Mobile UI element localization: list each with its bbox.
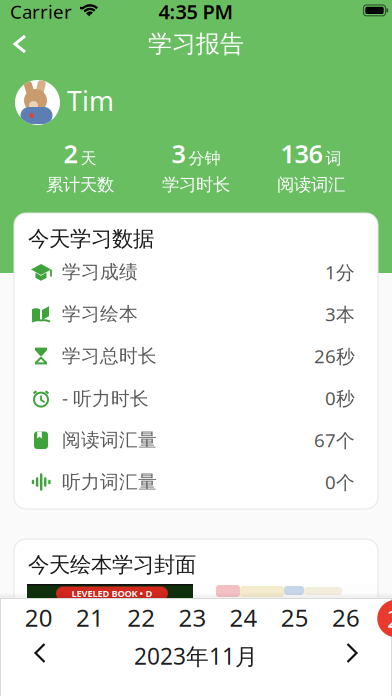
staticText: 阅读词汇	[277, 174, 345, 195]
button[interactable]: 上个月	[13, 642, 57, 664]
staticText: 1分	[325, 260, 355, 284]
staticText: 26	[332, 602, 360, 633]
staticText: 24	[230, 602, 258, 633]
staticText: 21	[76, 602, 104, 633]
staticText: 2023年11月	[134, 641, 258, 671]
staticText: 学习成绩	[62, 260, 138, 283]
staticText: 学习时长	[162, 174, 230, 195]
staticText: 2	[63, 136, 77, 170]
button[interactable]: 下个月	[334, 642, 378, 664]
staticText: 学习绘本	[62, 302, 138, 325]
staticText: Tim	[67, 83, 114, 118]
staticText: 今天学习数据	[28, 226, 154, 252]
staticText: 4:35 PM	[158, 0, 233, 25]
staticText: 0个	[325, 470, 355, 494]
staticText: 学习报告	[148, 29, 244, 59]
staticText: 3本	[325, 302, 355, 326]
button[interactable]: 21	[64, 597, 116, 638]
staticText: 25	[281, 602, 309, 633]
staticText: 136	[280, 136, 322, 170]
button[interactable]: Back	[0, 32, 44, 56]
button[interactable]: 22	[116, 597, 167, 638]
button[interactable]: 26	[320, 597, 372, 638]
button[interactable]: 27	[370, 598, 392, 639]
staticText: 67个	[314, 428, 355, 452]
staticText: 27	[387, 603, 392, 634]
staticText: 学习总时长	[62, 344, 157, 367]
staticText: - 听力时长	[62, 386, 149, 410]
staticText: LEVELED BOOK • D	[71, 587, 152, 600]
staticText: 今天绘本学习封面	[28, 552, 196, 578]
staticText: 阅读词汇量	[62, 428, 157, 451]
staticText: 20	[25, 602, 53, 633]
staticText: 天	[80, 148, 96, 168]
staticText: 3	[171, 136, 185, 170]
staticText: 26秒	[314, 344, 355, 368]
button[interactable]: 20	[13, 597, 64, 638]
button[interactable]: 23	[167, 597, 218, 638]
button[interactable]: 绘本封面	[215, 584, 377, 684]
staticText: 听力词汇量	[62, 470, 157, 493]
button[interactable]: 24	[218, 597, 269, 638]
staticText: 词	[325, 148, 341, 168]
staticText: 23	[178, 602, 206, 633]
staticText: 分钟	[188, 148, 220, 168]
staticText: 0秒	[325, 386, 355, 410]
button[interactable]: 25	[269, 597, 320, 638]
staticText: 累计天数	[46, 174, 114, 195]
staticText: 22	[127, 602, 155, 633]
button[interactable]: 绘本 Leveled Book D	[27, 584, 193, 684]
staticText: Carrier	[10, 0, 72, 24]
